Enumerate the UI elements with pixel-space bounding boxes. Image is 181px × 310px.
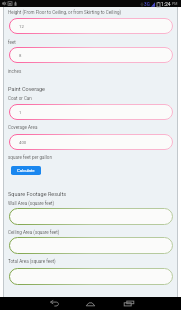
staticText: 8 xyxy=(19,53,22,58)
staticText: PM xyxy=(172,2,178,6)
button[interactable]: 8 xyxy=(9,47,173,63)
staticText: Square Footage Results xyxy=(8,191,67,197)
staticText: Coat or Can xyxy=(8,96,32,101)
staticText: square feet per gallon xyxy=(8,155,52,160)
staticText: 12 xyxy=(19,24,24,29)
staticText: Height (From Floor to Ceiling, or from S… xyxy=(8,10,122,15)
staticText: inches xyxy=(8,69,22,74)
button[interactable] xyxy=(9,208,173,225)
staticText: Total Area (square feet) xyxy=(8,259,56,264)
button[interactable] xyxy=(9,268,173,285)
button[interactable]: Calculate xyxy=(11,166,41,175)
button[interactable]: 400 xyxy=(9,134,173,150)
button[interactable]: Recent apps xyxy=(111,297,147,310)
button[interactable]: 1 xyxy=(9,104,173,120)
staticText: Ceiling Area (square feet) xyxy=(8,230,60,235)
staticText: Coverage Area xyxy=(8,125,38,130)
staticText: 1 xyxy=(19,110,22,115)
staticText: Calculate xyxy=(17,168,35,173)
staticText: 1:24 xyxy=(161,1,171,7)
staticText: feet xyxy=(8,40,16,45)
button[interactable]: Back xyxy=(36,297,72,310)
button[interactable]: 12 xyxy=(9,18,173,34)
button[interactable] xyxy=(9,237,173,254)
staticText: Wall Area (square feet) xyxy=(8,201,55,206)
button[interactable]: Home xyxy=(72,297,108,310)
staticText: Paint Coverage xyxy=(8,86,45,92)
staticText: 400 xyxy=(19,140,27,145)
staticText: 3G xyxy=(144,2,150,7)
